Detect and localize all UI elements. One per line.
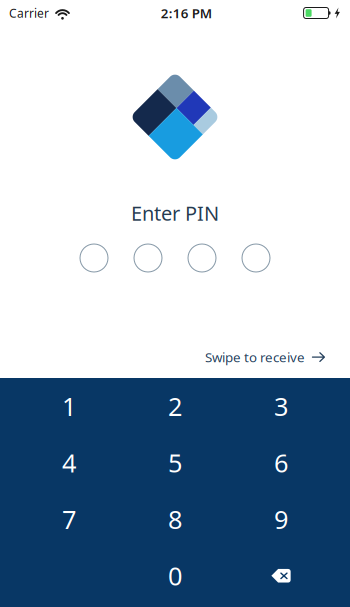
staticText: 9: [274, 502, 288, 536]
button[interactable]: 9: [228, 491, 334, 547]
staticText: 5: [168, 446, 182, 479]
staticText: 3: [274, 389, 288, 423]
staticText: 4: [62, 446, 76, 479]
staticText: 1: [62, 389, 76, 423]
button[interactable]: 0: [122, 547, 228, 604]
button[interactable]: Swipe to receive: [194, 339, 336, 375]
staticText: 8: [168, 502, 182, 536]
button[interactable]: 6: [228, 434, 334, 491]
staticText: 6: [274, 446, 288, 479]
staticText: 7: [62, 502, 76, 536]
button[interactable]: 5: [122, 434, 228, 491]
button[interactable]: 7: [16, 491, 122, 547]
button[interactable]: Delete: [228, 547, 334, 604]
button[interactable]: 3: [228, 378, 334, 434]
staticText: 2:16 PM: [161, 4, 212, 22]
button[interactable]: 8: [122, 491, 228, 547]
staticText: Carrier: [9, 5, 49, 21]
button[interactable]: 2: [122, 378, 228, 434]
staticText: Enter PIN: [131, 200, 219, 226]
staticText: 0: [168, 559, 182, 592]
button[interactable]: 1: [16, 378, 122, 434]
button[interactable]: 4: [16, 434, 122, 491]
staticText: 2: [168, 389, 182, 423]
staticText: Swipe to receive: [205, 348, 305, 366]
